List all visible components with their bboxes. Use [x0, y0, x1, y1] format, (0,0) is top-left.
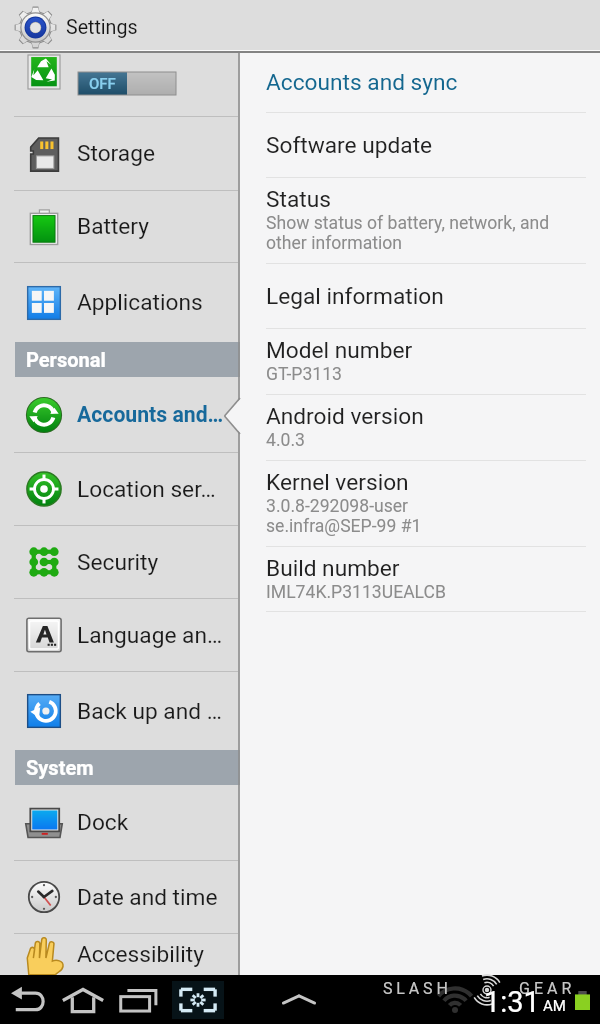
button[interactable]: Back [8, 986, 48, 1014]
button[interactable]: Date and time [0, 861, 240, 933]
staticText: Applications [77, 289, 203, 316]
staticText: Battery [77, 213, 149, 240]
staticText: 3.0.8-292098-user se.infra@SEP-99 #1 [266, 496, 422, 536]
staticText: Language an… [77, 622, 223, 649]
button[interactable]: Language an… [0, 599, 240, 671]
button[interactable]: Software update [240, 113, 600, 177]
staticText: GEAR [519, 979, 576, 998]
button[interactable]: Applications [0, 263, 240, 342]
button[interactable]: Dock [0, 785, 240, 860]
button[interactable]: Model number [240, 329, 600, 394]
button[interactable]: Battery [0, 191, 240, 262]
staticText: Legal information [266, 283, 444, 310]
staticText: Dock [77, 809, 129, 836]
staticText: Accounts and sync [266, 69, 458, 96]
button[interactable]: Back up and … [0, 672, 240, 750]
staticText: Back up and … [77, 698, 222, 725]
staticText: Kernel version [266, 469, 409, 496]
staticText: IML74K.P3113UEALCB [266, 582, 446, 603]
staticText: GT-P3113 [266, 364, 343, 385]
button[interactable]: Show notifications [273, 983, 325, 1015]
button[interactable]: Accounts and… [0, 377, 240, 452]
button[interactable]: Security [0, 526, 240, 598]
button[interactable]: Accessibility [0, 934, 240, 975]
staticText: Location ser… [77, 476, 216, 503]
staticText: Security [77, 549, 159, 576]
staticText: AM [543, 997, 566, 1015]
button[interactable]: Legal information [240, 264, 600, 328]
button[interactable]: Build number [240, 547, 600, 611]
button[interactable]: Kernel version [240, 461, 600, 546]
button[interactable]: Home [58, 986, 108, 1014]
button[interactable]: Location ser… [0, 453, 240, 525]
staticText: Build number [266, 555, 400, 582]
button[interactable]: Status [240, 178, 600, 263]
staticText: Date and time [77, 884, 218, 911]
staticText: Status [266, 186, 331, 213]
staticText: Personal [26, 348, 106, 371]
staticText: Model number [266, 337, 413, 364]
staticText: Accessibility [77, 941, 204, 968]
staticText: SLASH [383, 979, 452, 998]
staticText: Settings [66, 16, 138, 39]
staticText: Show status of battery, network, and oth… [266, 213, 550, 253]
staticText: Storage [77, 140, 155, 167]
staticText: 4.0.3 [266, 430, 305, 451]
staticText: Android version [266, 403, 424, 430]
staticText: System [26, 756, 94, 779]
button[interactable]: Android version [240, 395, 600, 460]
staticText: OFF [89, 75, 116, 93]
staticText: Software update [266, 132, 433, 159]
staticText: Accounts and… [77, 402, 224, 427]
button[interactable]: Recent apps [116, 986, 160, 1014]
staticText: 1:31 [484, 985, 540, 1019]
button[interactable]: Storage [0, 117, 240, 190]
button[interactable]: OFF [0, 53, 240, 116]
button[interactable]: Screenshot [172, 981, 224, 1019]
